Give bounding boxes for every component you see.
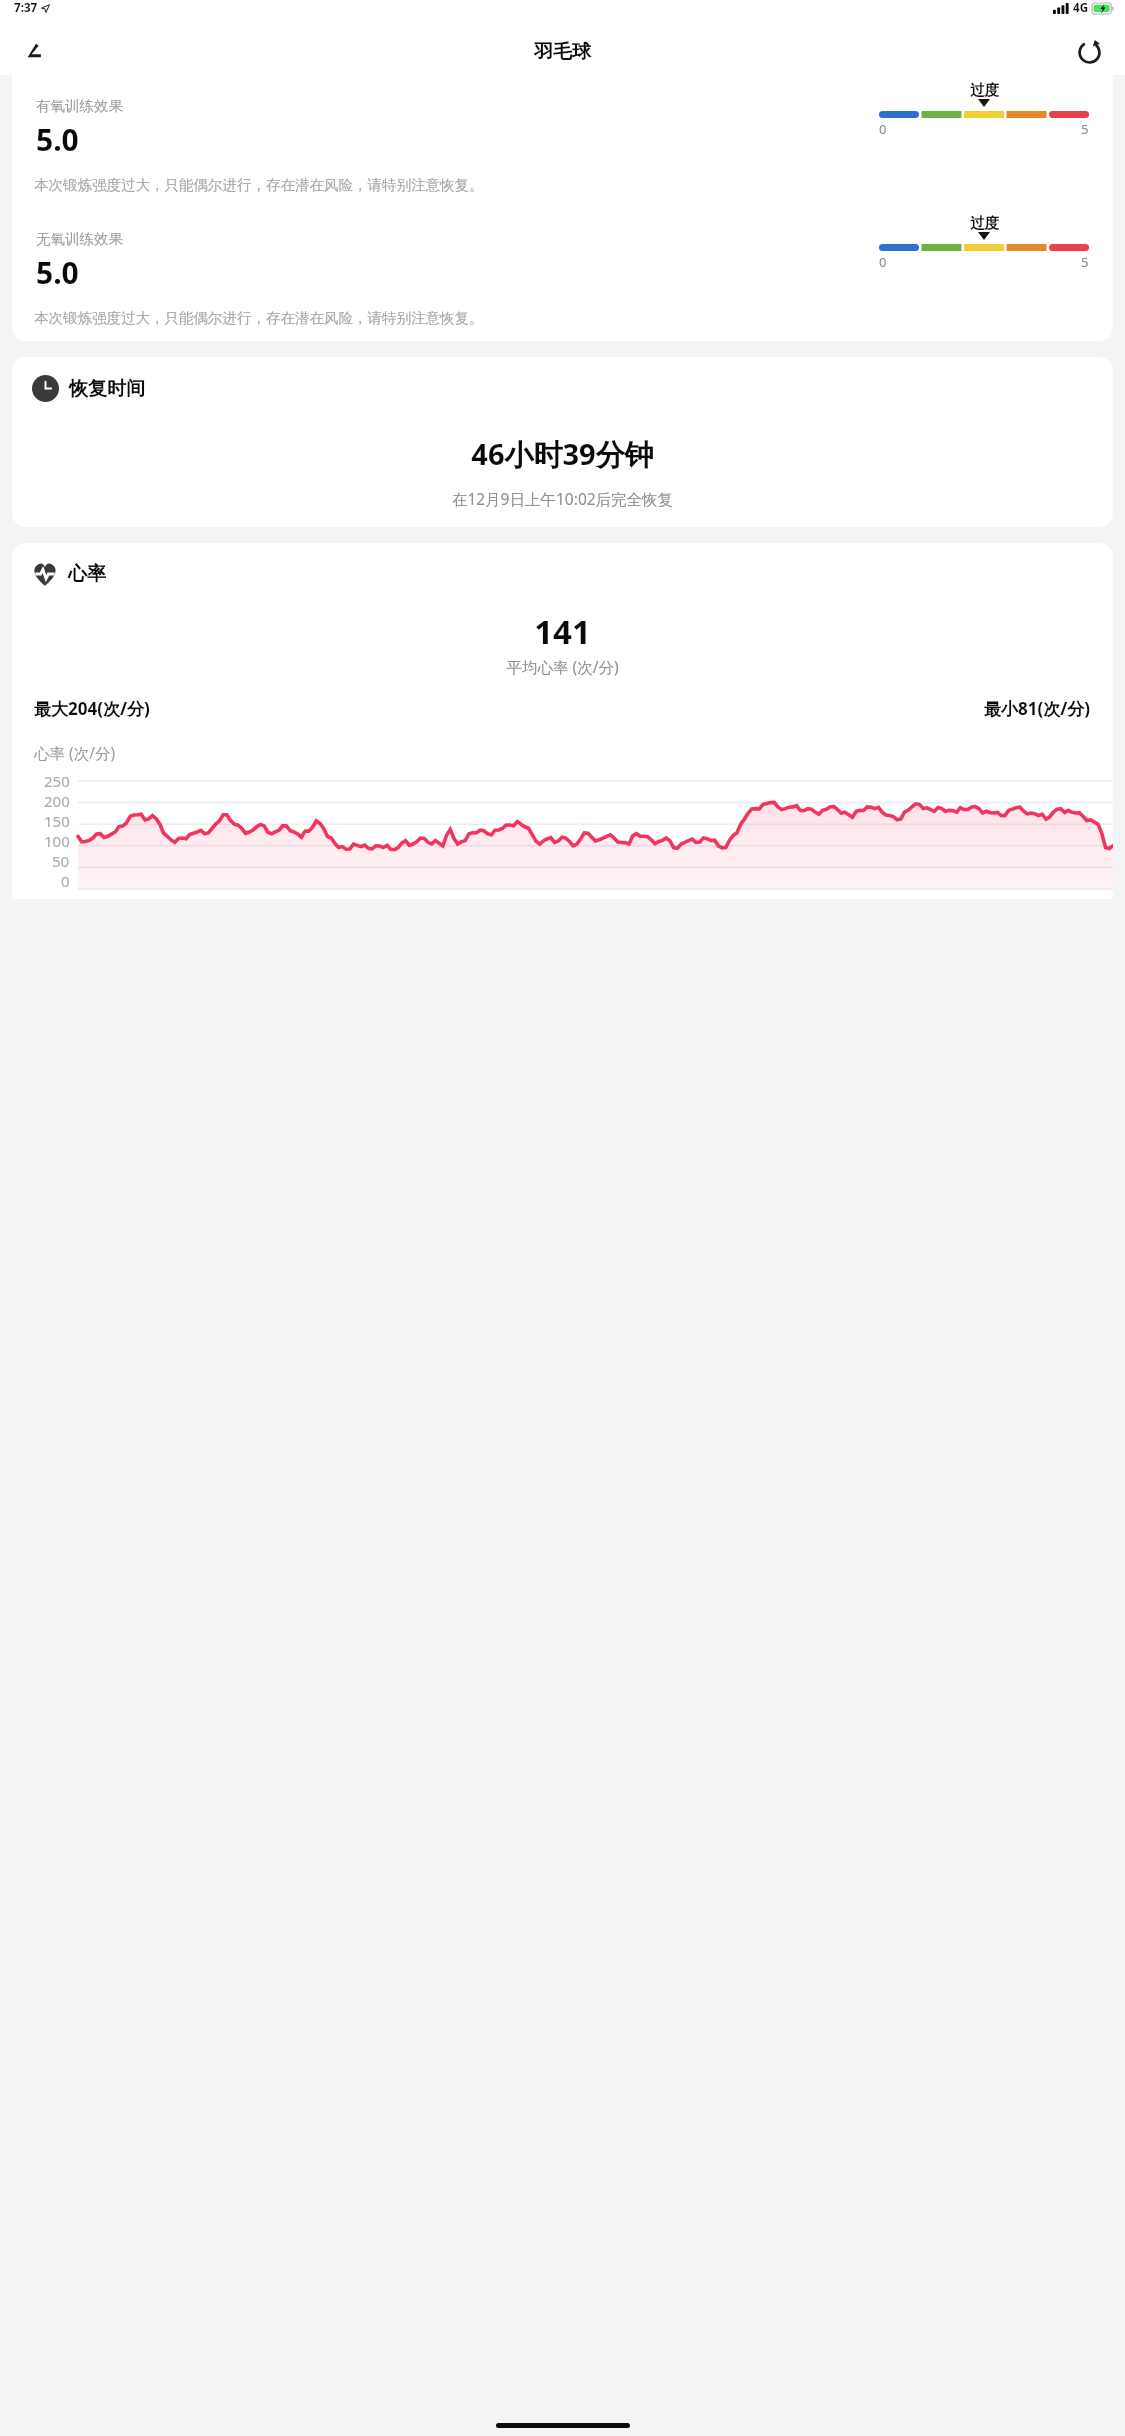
staticText: 0 [879,120,887,138]
staticText: 5 [1081,120,1089,138]
staticText: 46小时39分钟 [12,434,1113,474]
staticText: 过度 [970,81,999,99]
staticText: 0 [879,253,887,271]
staticText: 羽毛球 [534,40,591,64]
staticText: 150 [44,811,70,831]
staticText: 4G [1073,0,1089,16]
button[interactable]: Back [14,30,58,74]
staticText: 本次锻炼强度过大，只能偶尔进行，存在潜在风险，请特别注意恢复。 [34,309,1091,327]
staticText: 50 [52,851,70,871]
staticText: 有氧训练效果 [36,97,123,115]
staticText: 心率 [68,562,106,586]
staticText: 100 [44,831,70,851]
staticText: 在12月9日上午10:02后完全恢复 [12,488,1113,509]
staticText: 恢复时间 [69,377,145,401]
staticText: 5.0 [36,119,79,160]
staticText: 无氧训练效果 [36,230,123,248]
button[interactable]: 恢复时间 [12,357,1113,527]
staticText: 平均心率 (次/分) [12,656,1113,677]
button[interactable]: Refresh [1067,30,1111,74]
staticText: 心率 (次/分) [34,742,116,763]
button[interactable]: 有氧训练效果 [12,75,1113,341]
staticText: 过度 [970,214,999,232]
staticText: 本次锻炼强度过大，只能偶尔进行，存在潜在风险，请特别注意恢复。 [34,176,1091,194]
staticText: 最小81(次/分) [984,697,1091,720]
staticText: 7:37 [14,0,38,16]
staticText: 5 [1081,253,1089,271]
staticText: 200 [44,791,70,811]
staticText: 141 [12,609,1113,654]
staticText: 0 [61,871,70,891]
staticText: 250 [44,771,70,791]
button[interactable]: 心率 [12,543,1113,899]
staticText: 5.0 [36,252,79,293]
staticText: 最大204(次/分) [34,697,150,720]
